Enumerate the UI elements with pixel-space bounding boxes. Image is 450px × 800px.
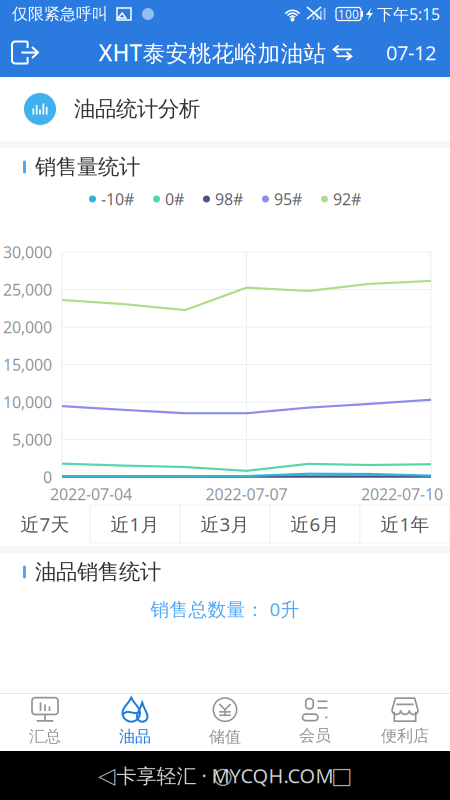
staticText: 95# — [274, 188, 302, 210]
staticText: 近6月 — [290, 512, 339, 536]
staticText: 98# — [215, 188, 243, 210]
staticText: 2022-07-07 — [205, 483, 287, 505]
staticText: 下午5:15 — [377, 3, 440, 25]
staticText: 销售量统计 — [35, 154, 140, 180]
button[interactable]: 07-12 — [372, 28, 450, 77]
staticText: 2022-07-10 — [361, 483, 443, 505]
staticText: 10,000 — [3, 391, 52, 413]
button[interactable]: 近7天 — [0, 505, 90, 543]
staticText: 仅限紧急呼叫 — [12, 4, 108, 24]
button[interactable]: 近1月 — [90, 505, 180, 543]
button[interactable]: 近1年 — [360, 505, 450, 543]
staticText: -10# — [101, 188, 134, 210]
staticText: ◁ — [98, 763, 115, 788]
staticText: 油品销售统计 — [35, 559, 161, 585]
button[interactable]: 储值 — [180, 693, 270, 751]
staticText: ○ — [213, 763, 233, 788]
button[interactable]: 汇总 — [0, 693, 90, 751]
staticText: 近3月 — [200, 512, 249, 536]
staticText: 15,000 — [3, 354, 52, 375]
staticText: 20,000 — [3, 316, 52, 338]
staticText: 近7天 — [20, 512, 69, 536]
staticText: 30,000 — [3, 241, 52, 263]
staticText: □ — [331, 763, 352, 788]
staticText: 92# — [333, 188, 361, 210]
staticText: 卡享轻汇 · MYCQH.COM — [116, 762, 333, 789]
staticText: 100 — [338, 6, 359, 22]
staticText: 0 — [43, 466, 52, 488]
staticText: 油品统计分析 — [74, 96, 200, 122]
staticText: 0# — [165, 188, 184, 210]
staticText: 07-12 — [386, 39, 436, 66]
button[interactable]: 油品 — [90, 693, 180, 751]
button[interactable]: 近3月 — [180, 505, 270, 543]
staticText: 近1月 — [110, 512, 159, 536]
staticText: 便利店 — [381, 726, 429, 746]
staticText: 2022-07-04 — [50, 483, 132, 505]
button[interactable]: 近6月 — [270, 505, 360, 543]
staticText: 5,000 — [12, 429, 52, 450]
staticText: 近1年 — [380, 512, 429, 536]
button[interactable]: 退出 — [0, 28, 50, 77]
staticText: XHT泰安桃花峪加油站 — [98, 37, 326, 68]
staticText: 会员 — [299, 726, 331, 745]
staticText: 油品 — [119, 727, 151, 746]
staticText: 销售总数量： 0升 — [150, 597, 299, 621]
button[interactable]: XHT泰安桃花峪加油站 — [98, 28, 351, 77]
staticText: 25,000 — [3, 279, 52, 300]
button[interactable]: 会员 — [270, 693, 360, 751]
staticText: 储值 — [209, 727, 241, 747]
button[interactable]: 便利店 — [360, 693, 450, 751]
staticText: 汇总 — [29, 727, 61, 746]
